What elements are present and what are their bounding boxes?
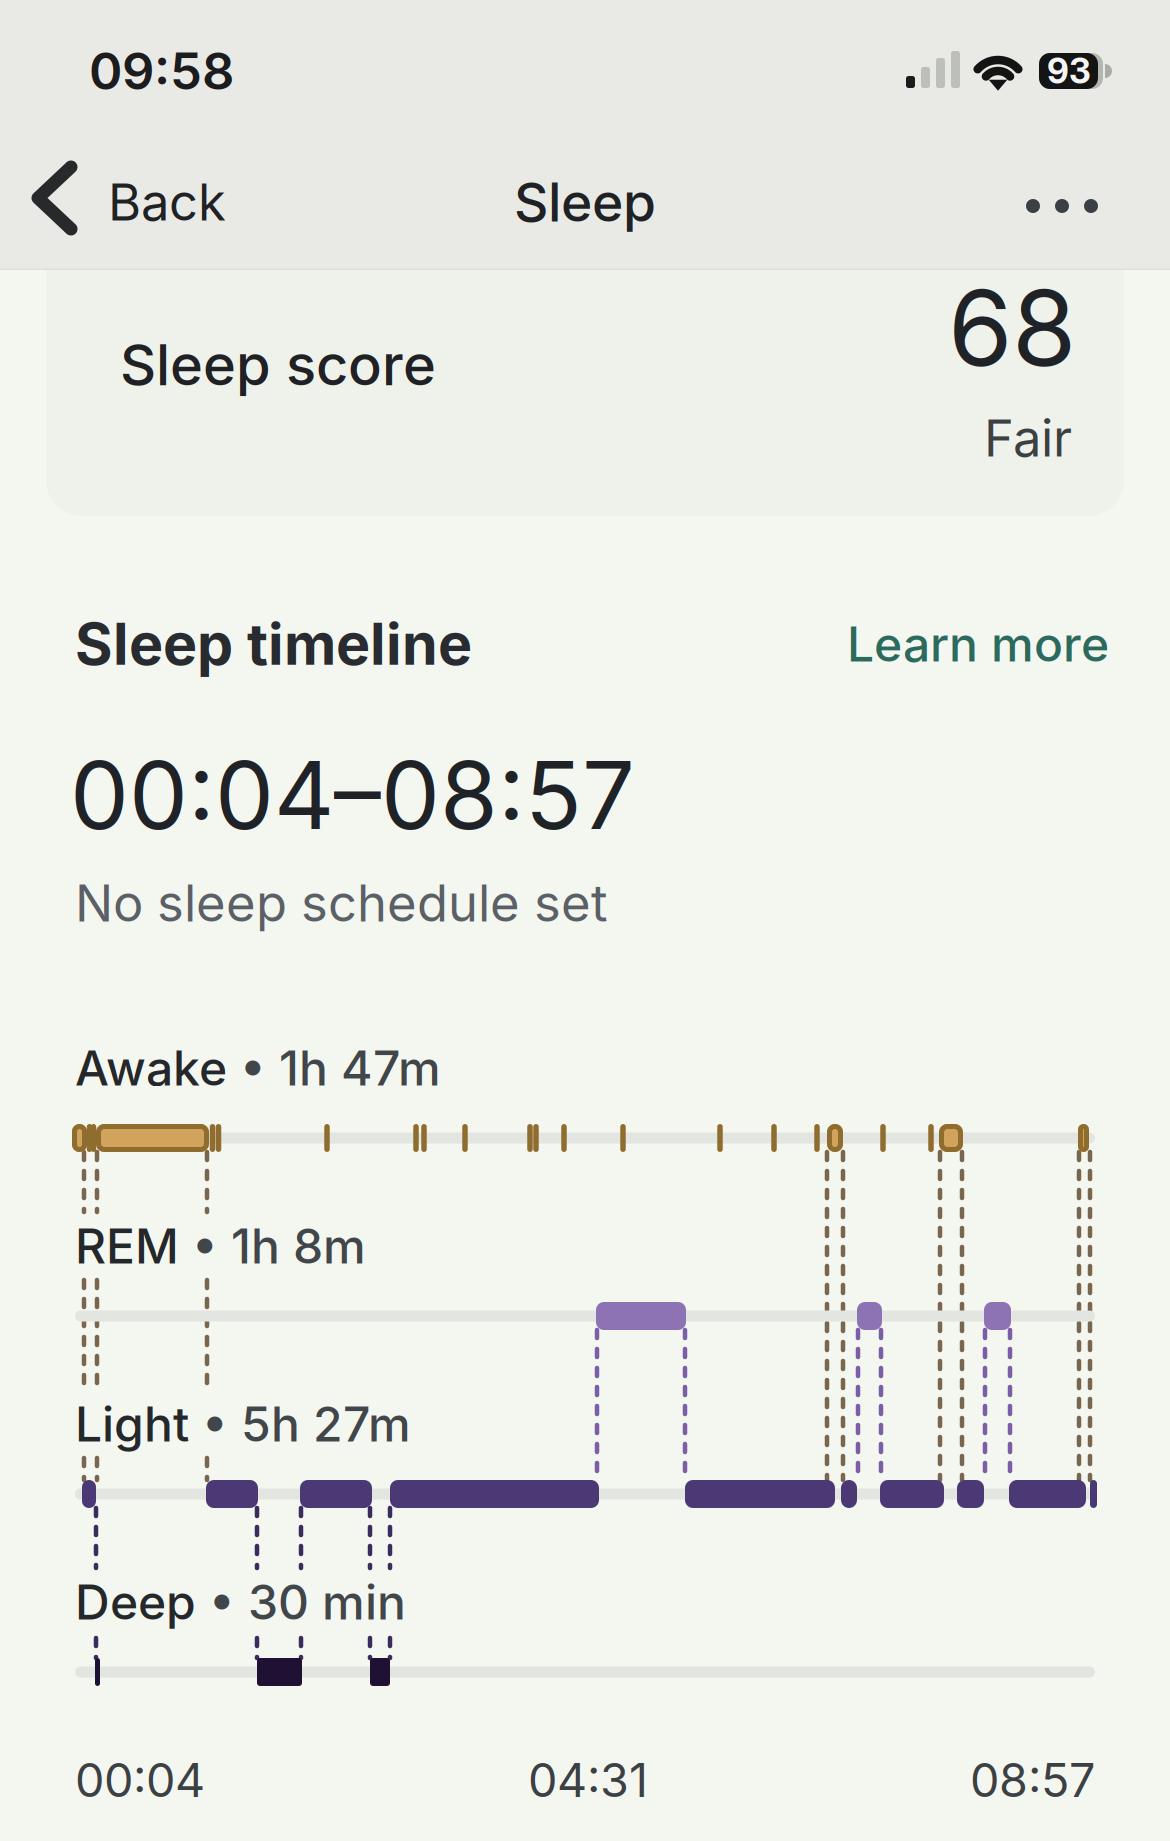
staticText: • 1h 8m [179, 1218, 366, 1274]
staticText: No sleep schedule set [75, 873, 608, 933]
staticText: 09:58 [89, 41, 234, 101]
staticText: Back [108, 172, 226, 232]
staticText: 68 [948, 267, 1076, 389]
staticText: Sleep timeline [75, 610, 472, 678]
staticText: 04:31 [528, 1752, 648, 1808]
staticText: • 30 min [196, 1574, 406, 1630]
staticText: Awake [75, 1040, 227, 1096]
staticText: Fair [984, 408, 1072, 468]
staticText: Sleep score [120, 332, 436, 398]
staticText: Deep [75, 1574, 196, 1630]
staticText: Sleep [514, 170, 656, 233]
staticText: 93 [1047, 51, 1091, 91]
staticText: 08:57 [970, 1752, 1095, 1808]
staticText: 00:04–08:57 [70, 740, 635, 850]
staticText: • 5h 27m [189, 1396, 411, 1452]
staticText: • 1h 47m [227, 1040, 441, 1096]
staticText: Light [75, 1396, 189, 1452]
staticText: REM [75, 1218, 179, 1274]
staticText: 00:04 [75, 1752, 205, 1808]
staticText: Learn more [847, 616, 1109, 672]
